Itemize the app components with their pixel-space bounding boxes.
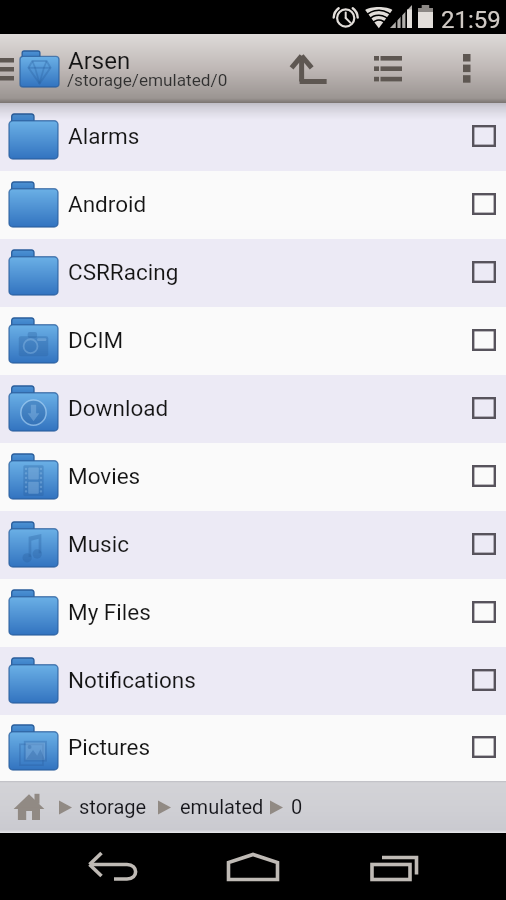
button[interactable]: Change view mode [360, 34, 416, 103]
staticText: My Files [68, 599, 151, 625]
button[interactable]: Select Music [460, 516, 506, 572]
button[interactable]: Arsen [18, 34, 268, 103]
button[interactable]: My Files [0, 579, 506, 647]
staticText: Arsen [68, 47, 131, 75]
staticText: storage [79, 795, 147, 818]
staticText: Android [68, 191, 147, 217]
staticText: 21:59 [441, 6, 501, 34]
button[interactable]: Select CSRRacing [460, 244, 506, 300]
button[interactable]: Notifications [0, 647, 506, 715]
button[interactable]: Select Android [460, 176, 506, 232]
button[interactable]: Select My Files [460, 584, 506, 640]
staticText: 0 [291, 795, 303, 818]
button[interactable]: Download [0, 375, 506, 443]
button[interactable]: Open navigation drawer [0, 34, 16, 103]
button[interactable]: Back [68, 833, 160, 900]
button[interactable]: Android [0, 171, 506, 239]
button[interactable]: Select Download [460, 380, 506, 436]
staticText: Music [68, 531, 129, 557]
button[interactable]: Select DCIM [460, 312, 506, 368]
button[interactable]: More options [443, 34, 491, 103]
button[interactable]: Movies [0, 443, 506, 511]
staticText: /storage/emulated/0 [67, 70, 228, 90]
button[interactable]: Select Notifications [460, 652, 506, 708]
button[interactable]: storage [79, 795, 147, 818]
button[interactable]: Select Movies [460, 448, 506, 504]
button[interactable]: Alarms [0, 103, 506, 171]
button[interactable]: emulated [180, 795, 264, 818]
staticText: Alarms [68, 123, 140, 149]
button[interactable]: Go to parent folder [281, 34, 337, 103]
staticText: Movies [68, 463, 141, 489]
button[interactable]: DCIM [0, 307, 506, 375]
button[interactable]: Select Alarms [460, 108, 506, 164]
staticText: Notifications [68, 667, 196, 693]
button[interactable]: Recent apps [350, 833, 442, 900]
button[interactable]: Pictures [0, 715, 506, 781]
staticText: Pictures [68, 734, 151, 760]
button[interactable]: Home [207, 833, 299, 900]
staticText: DCIM [68, 327, 124, 353]
button[interactable]: 0 [291, 795, 303, 818]
button[interactable]: Home [6, 781, 52, 833]
staticText: Download [68, 395, 169, 421]
staticText: emulated [180, 795, 264, 818]
button[interactable]: CSRRacing [0, 239, 506, 307]
staticText: CSRRacing [68, 259, 179, 285]
button[interactable]: Select Pictures [460, 719, 506, 775]
button[interactable]: Music [0, 511, 506, 579]
